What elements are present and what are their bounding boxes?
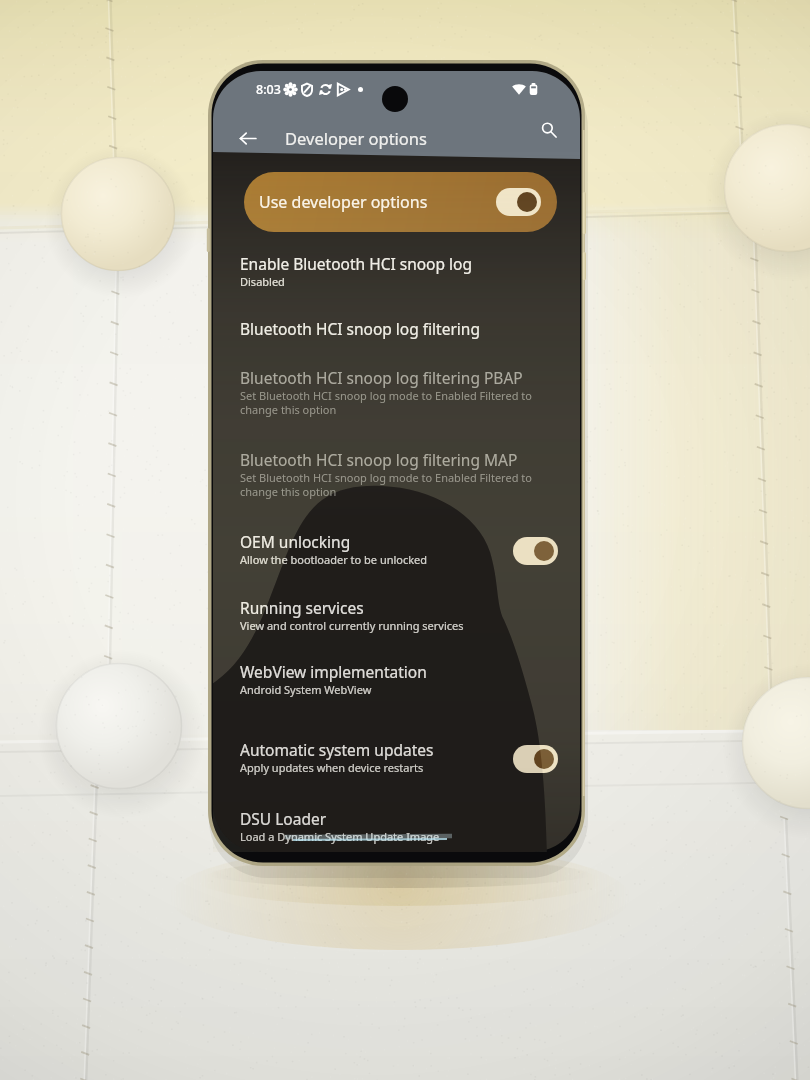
staticText: Disabled [240,274,285,289]
staticText: 8:03 [256,81,281,98]
staticText: Set Bluetooth HCI snoop log mode to Enab… [240,388,532,417]
staticText: Set Bluetooth HCI snoop log mode to Enab… [240,470,532,499]
button[interactable]: Bluetooth HCI snoop log filtering [213,318,580,367]
staticText: Allow the bootloader to be unlocked [240,552,428,567]
button[interactable]: DSU Loader [213,808,580,852]
button[interactable]: Back [229,119,267,157]
staticText: Load a Dynamic System Update Image [240,829,440,844]
button[interactable]: WebView implementation [213,661,580,723]
staticText: Android System WebView [240,682,372,697]
button[interactable]: Use developer options [244,172,557,232]
button[interactable]: Toggle [513,745,558,773]
button[interactable]: Running services [213,597,580,659]
button[interactable]: Bluetooth HCI snoop log filtering MAP [213,449,580,511]
button[interactable]: OEM unlocking [213,531,580,593]
staticText: Bluetooth HCI snoop log filtering PBAP [240,367,523,388]
staticText: Automatic system updates [240,739,434,760]
staticText: Bluetooth HCI snoop log filtering [240,318,480,339]
button[interactable]: Toggle [513,537,558,565]
staticText: Enable Bluetooth HCI snoop log [240,253,472,274]
staticText: WebView implementation [240,661,427,682]
staticText: Use developer options [259,191,428,213]
staticText: Running services [240,597,364,618]
staticText: OEM unlocking [240,531,351,552]
button[interactable]: Enable Bluetooth HCI snoop log [213,253,580,315]
button[interactable]: Bluetooth HCI snoop log filtering PBAP [213,367,580,429]
button[interactable]: Automatic system updates [213,739,580,801]
staticText: DSU Loader [240,808,327,829]
button[interactable]: Search [530,111,568,149]
staticText: Apply updates when device restarts [240,760,424,775]
staticText: Bluetooth HCI snoop log filtering MAP [240,449,518,470]
button[interactable]: Toggle [496,188,541,216]
staticText: View and control currently running servi… [240,618,464,633]
staticText: Developer options [285,127,427,149]
